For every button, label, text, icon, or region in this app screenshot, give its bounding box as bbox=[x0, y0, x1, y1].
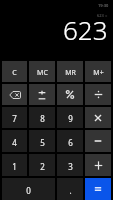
button[interactable]: Plus minus bbox=[29, 84, 55, 105]
staticText: 4 bbox=[12, 137, 17, 148]
staticText: . bbox=[69, 185, 72, 196]
button[interactable]: . bbox=[57, 178, 83, 200]
button[interactable]: MR bbox=[57, 61, 83, 82]
staticText: 623 bbox=[63, 12, 108, 47]
staticText: 0 bbox=[26, 185, 31, 196]
button[interactable]: 4 bbox=[2, 130, 27, 152]
staticText: MC bbox=[37, 68, 48, 78]
button[interactable]: 2 bbox=[29, 154, 55, 176]
button[interactable]: Minus bbox=[85, 130, 111, 152]
staticText: 6 bbox=[68, 137, 73, 148]
staticText: 8 bbox=[40, 113, 45, 124]
staticText: 5 bbox=[40, 137, 45, 148]
button[interactable]: 7 bbox=[2, 107, 27, 128]
button[interactable]: MC bbox=[29, 61, 55, 82]
button[interactable]: 8 bbox=[29, 107, 55, 128]
button[interactable]: Percent bbox=[57, 84, 83, 105]
staticText: 9 bbox=[68, 113, 73, 124]
button[interactable]: 0 bbox=[2, 178, 55, 200]
staticText: 3 bbox=[68, 161, 73, 172]
button[interactable]: M+ bbox=[85, 61, 111, 82]
button[interactable]: 5 bbox=[29, 130, 55, 152]
staticText: 623 = bbox=[97, 13, 108, 18]
staticText: C bbox=[12, 68, 17, 78]
button[interactable]: Backspace bbox=[2, 84, 27, 105]
button[interactable]: Equals bbox=[85, 178, 111, 200]
staticText: M+ bbox=[93, 68, 104, 78]
staticText: MR bbox=[65, 68, 76, 78]
button[interactable]: 6 bbox=[57, 130, 83, 152]
button[interactable]: 3 bbox=[57, 154, 83, 176]
staticText: 2 bbox=[40, 161, 45, 172]
button[interactable]: 1 bbox=[2, 154, 27, 176]
button[interactable]: Plus bbox=[85, 154, 111, 176]
button[interactable]: 9 bbox=[57, 107, 83, 128]
button[interactable]: Divide bbox=[85, 84, 111, 105]
button[interactable]: C bbox=[2, 61, 27, 82]
button[interactable]: Multiply bbox=[85, 107, 111, 128]
staticText: 1 bbox=[12, 161, 17, 172]
staticText: 19:30 bbox=[98, 3, 109, 8]
staticText: 7 bbox=[12, 113, 17, 124]
